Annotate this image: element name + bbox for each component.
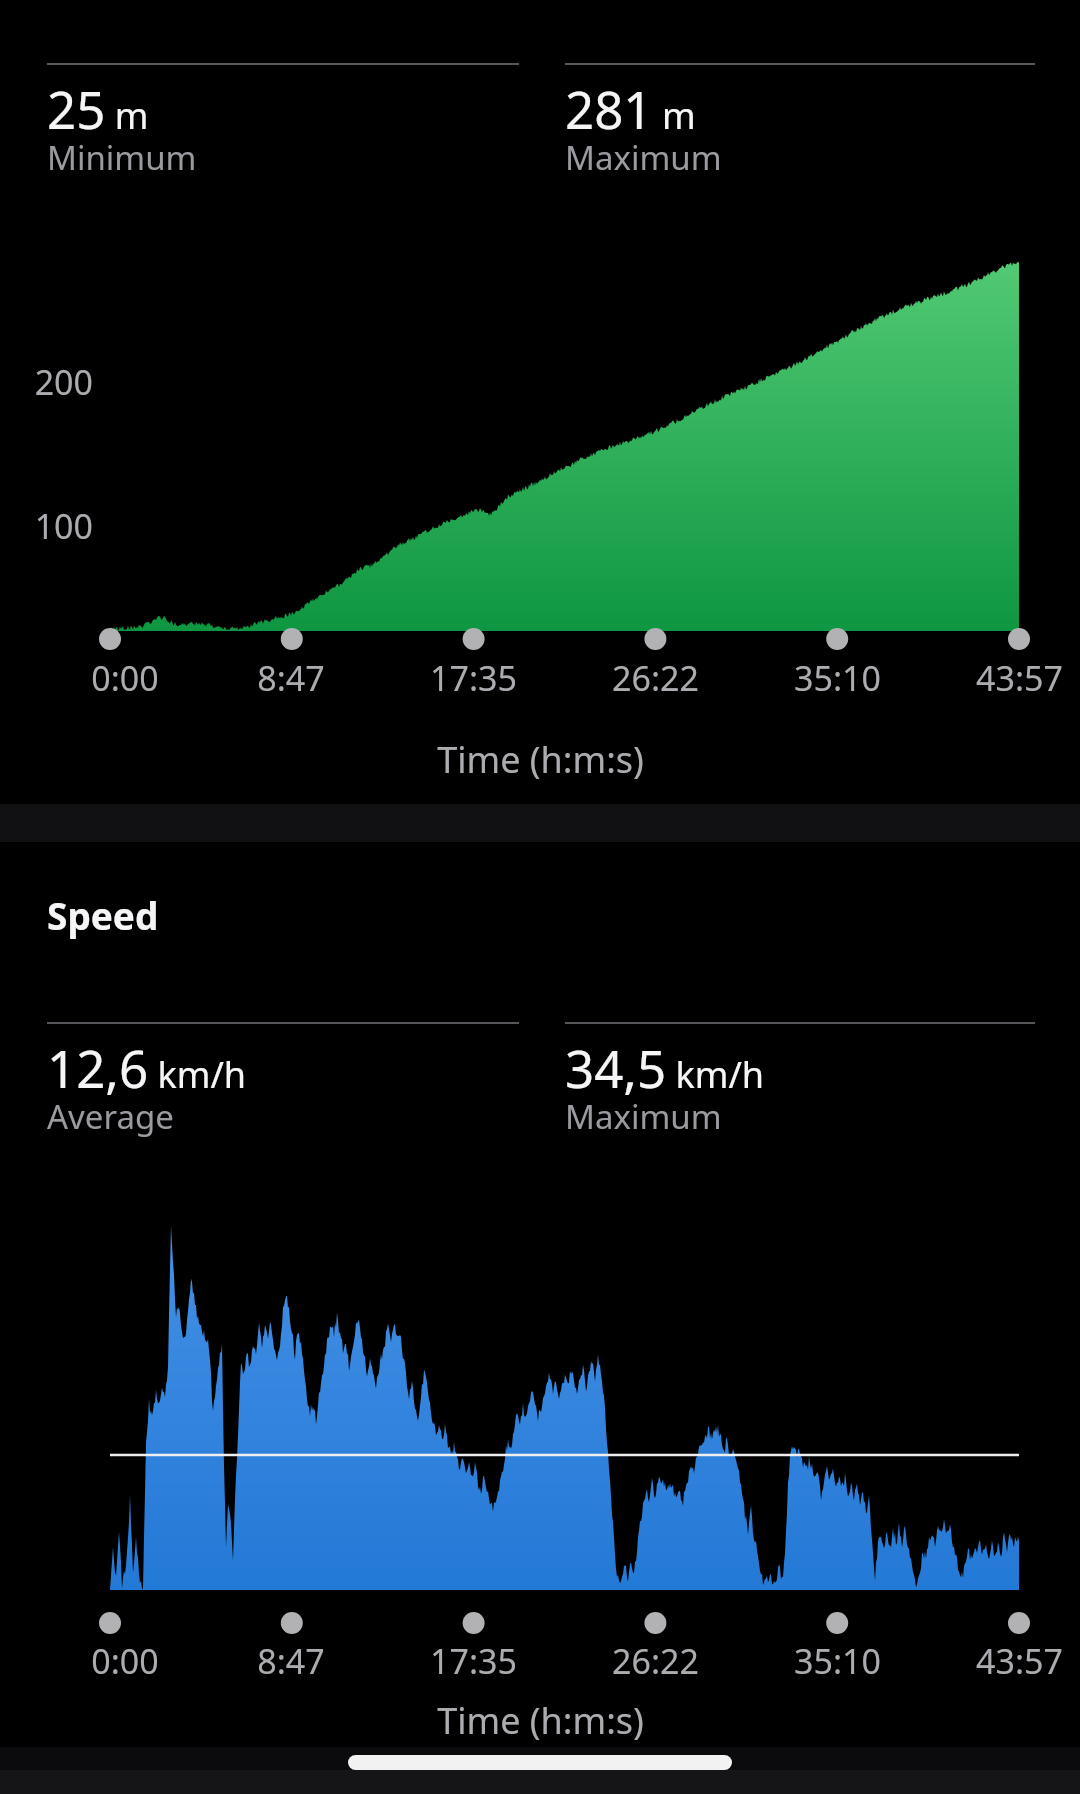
staticText: 0:00 <box>91 1638 159 1684</box>
staticText: 0:00 <box>91 655 159 701</box>
staticText: 8:47 <box>257 655 325 701</box>
staticText: 17:35 <box>430 655 517 701</box>
staticText: 8:47 <box>257 1638 325 1684</box>
staticText: 12,6 km/h <box>47 1033 247 1102</box>
staticText: 25 m <box>47 74 149 143</box>
staticText: 34,5 km/h <box>565 1033 765 1102</box>
staticText: 43:57 <box>976 655 1063 701</box>
staticText: Average <box>47 1094 174 1139</box>
staticText: 281 m <box>565 74 696 143</box>
staticText: Time (h:m:s) <box>437 1696 644 1745</box>
staticText: 26:22 <box>612 1638 699 1684</box>
staticText: Time (h:m:s) <box>437 735 644 784</box>
staticText: Minimum <box>47 135 197 180</box>
staticText: 26:22 <box>612 655 699 701</box>
staticText: 35:10 <box>794 1638 881 1684</box>
staticText: 17:35 <box>430 1638 517 1684</box>
staticText: Maximum <box>565 135 722 180</box>
staticText: Speed <box>47 890 159 940</box>
staticText: 100 <box>34 503 93 549</box>
staticText: 200 <box>34 359 93 405</box>
staticText: 35:10 <box>794 655 881 701</box>
staticText: 43:57 <box>976 1638 1063 1684</box>
staticText: Maximum <box>565 1094 722 1139</box>
